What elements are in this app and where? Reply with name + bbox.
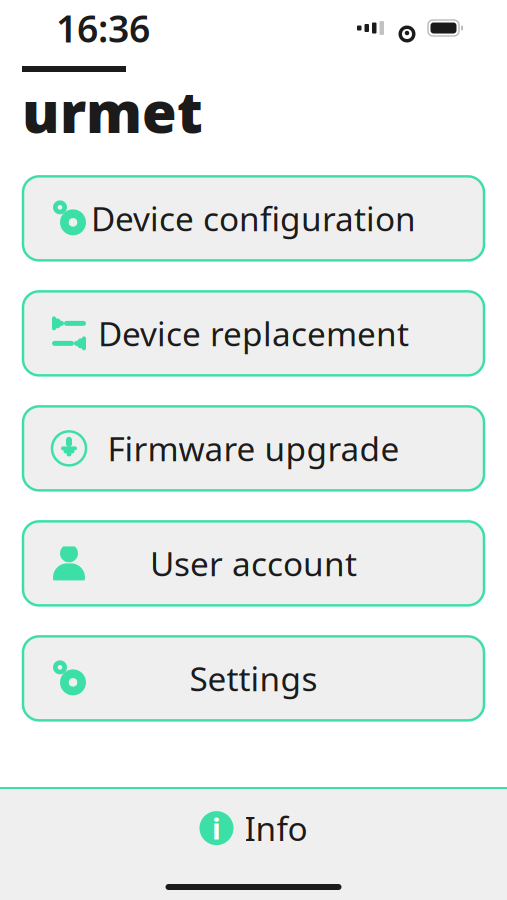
staticText: Device replacement — [98, 311, 409, 355]
staticText: Firmware upgrade — [107, 426, 399, 470]
button[interactable]: Firmware upgrade — [23, 406, 484, 490]
button[interactable]: i — [0, 789, 507, 867]
button[interactable]: Settings — [23, 636, 484, 720]
staticText: Settings — [189, 656, 317, 700]
button[interactable]: User account — [23, 521, 484, 605]
staticText: Info — [244, 806, 307, 850]
staticText: urmet — [22, 74, 203, 148]
staticText: User account — [150, 541, 357, 585]
staticText: i — [212, 809, 221, 848]
button[interactable]: Device configuration — [23, 176, 484, 260]
staticText: 16:36 — [56, 3, 150, 53]
staticText: Device configuration — [91, 196, 416, 240]
button[interactable]: Device replacement — [23, 291, 484, 375]
